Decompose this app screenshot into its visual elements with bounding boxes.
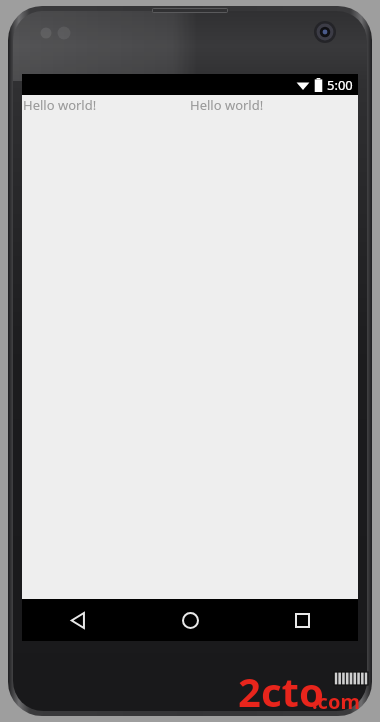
staticText: Hello world! (190, 96, 264, 114)
button[interactable]: Home (134, 599, 246, 641)
staticText: 5:00 (327, 76, 353, 94)
button[interactable]: Back (22, 599, 134, 641)
button[interactable]: Recent apps (246, 599, 358, 641)
staticText: Hello world! (23, 96, 97, 114)
staticText: 2cto (238, 664, 324, 710)
staticText: .com (312, 688, 360, 715)
